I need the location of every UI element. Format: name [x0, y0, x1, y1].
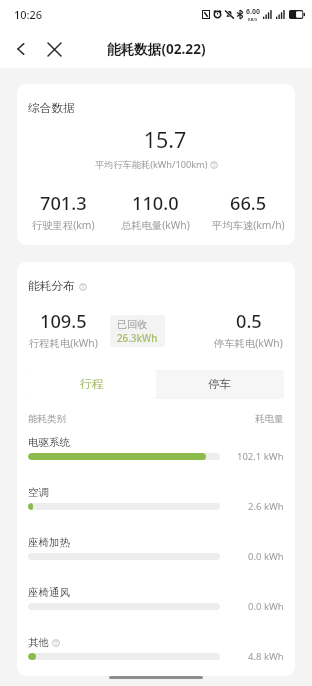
staticText: 平均行车能耗(kWh/100km): [95, 158, 208, 171]
staticText: 行程耗电(kWh): [29, 336, 98, 350]
staticText: 能耗类别: [28, 413, 66, 425]
staticText: 2.6 kWh: [248, 500, 284, 513]
staticText: 其他: [28, 636, 49, 649]
button[interactable]: Close: [39, 34, 69, 64]
staticText: 综合数据: [28, 101, 75, 116]
button[interactable]: Back: [6, 34, 36, 64]
staticText: 行驶里程(km): [32, 218, 95, 232]
staticText: 15.7: [35, 125, 295, 154]
button[interactable]: 行程: [28, 370, 156, 399]
button[interactable]: 停车: [156, 370, 284, 399]
staticText: 能耗数据(02.22): [107, 39, 206, 58]
staticText: 0.0 kWh: [248, 550, 284, 563]
staticText: 102.1 kWh: [237, 450, 284, 463]
staticText: 110.0: [132, 191, 179, 216]
staticText: KB/S: [248, 17, 258, 22]
staticText: 总耗电量(kWh): [121, 218, 190, 232]
staticText: 平均车速(km/h): [212, 218, 285, 232]
staticText: 0.0 kWh: [248, 600, 284, 613]
staticText: 4.8 kWh: [248, 650, 284, 663]
staticText: 701.3: [40, 191, 87, 216]
staticText: 停车: [208, 377, 232, 392]
staticText: 空调: [28, 486, 49, 499]
staticText: 26.3kWh: [117, 332, 158, 345]
staticText: 电驱系统: [28, 436, 70, 449]
staticText: 10:26: [14, 7, 43, 22]
staticText: 座椅加热: [28, 536, 70, 549]
staticText: 耗电量: [255, 413, 284, 425]
staticText: 66.5: [230, 191, 267, 216]
staticText: 6.00: [246, 7, 260, 17]
staticText: 0.5: [236, 309, 262, 334]
staticText: 109.5: [40, 309, 87, 334]
staticText: 能耗分布: [28, 279, 75, 294]
staticText: 已回收: [117, 318, 148, 331]
staticText: 行程: [80, 377, 104, 392]
staticText: 停车耗电(kWh): [214, 336, 283, 350]
staticText: 座椅通风: [28, 586, 70, 599]
